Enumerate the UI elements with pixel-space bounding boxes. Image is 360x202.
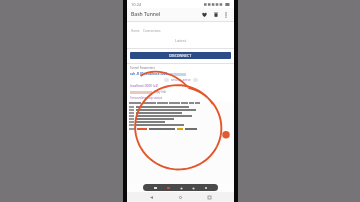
button[interactable]: Back bbox=[147, 193, 156, 202]
staticText: Bash Tunnel bbox=[131, 11, 161, 18]
staticText: ssh -R 80:localhost:3000 bbox=[130, 72, 168, 76]
button[interactable]: More options bbox=[221, 10, 230, 19]
staticText: Home bbox=[131, 29, 140, 33]
staticText: Latest bbox=[127, 38, 234, 43]
staticText: Copy link bbox=[154, 90, 166, 94]
staticText: Tunnel Parameters bbox=[130, 66, 155, 70]
staticText: session-active bbox=[171, 78, 191, 82]
button[interactable]: Recent apps bbox=[205, 193, 214, 202]
button[interactable]: Home bbox=[176, 193, 185, 202]
button[interactable]: Settings bbox=[190, 185, 196, 191]
button[interactable]: Brightness bbox=[178, 185, 184, 191]
staticText: 10:24 bbox=[131, 2, 142, 7]
button[interactable]: Record bbox=[165, 185, 171, 191]
staticText: localhost:3000 (v2) bbox=[130, 84, 159, 88]
button[interactable]: Favorite bbox=[199, 9, 210, 20]
button[interactable]: Keyboard bbox=[152, 185, 158, 191]
staticText: DISCONNECT bbox=[169, 53, 192, 58]
button[interactable]: Delete bbox=[210, 9, 221, 20]
button[interactable]: Close bbox=[203, 185, 209, 191]
staticText: Connections bbox=[143, 29, 161, 33]
staticText: Forwarding http status bbox=[130, 96, 163, 100]
button[interactable]: DISCONNECT bbox=[130, 52, 231, 59]
